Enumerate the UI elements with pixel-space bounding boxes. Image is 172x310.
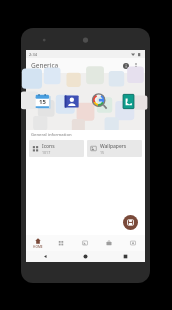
button[interactable]: Navigation tab <box>97 235 121 251</box>
button[interactable]: Navigation tab <box>121 235 145 251</box>
staticText: HOME <box>33 245 43 249</box>
staticText: General information <box>31 132 72 138</box>
staticText: 2:34 <box>29 52 37 57</box>
button[interactable]: Phone <box>120 93 137 110</box>
staticText: 1017 <box>42 150 51 155</box>
button[interactable]: Generica <box>26 58 145 73</box>
button[interactable]: Home <box>65 251 105 262</box>
button[interactable]: More options <box>131 61 141 71</box>
button[interactable]: Wallpapers <box>87 140 142 157</box>
button[interactable]: Back <box>26 251 65 262</box>
button[interactable]: Calendar <box>34 93 51 110</box>
staticText: 15 <box>100 150 105 155</box>
button[interactable]: HOME <box>26 235 49 251</box>
button[interactable]: Contacts <box>63 93 80 110</box>
button[interactable]: Information <box>120 60 131 71</box>
staticText: Wallpapers <box>100 143 127 150</box>
button[interactable]: Navigation tab <box>49 235 73 251</box>
button[interactable]: Search <box>91 93 108 110</box>
staticText: 15 <box>39 98 46 106</box>
staticText: Generica <box>31 61 59 70</box>
button[interactable]: Icons <box>29 140 84 157</box>
button[interactable]: Open <box>123 215 138 230</box>
staticText: Icons <box>42 143 55 150</box>
button[interactable]: Navigation tab <box>73 235 97 251</box>
button[interactable]: Recents <box>105 251 145 262</box>
